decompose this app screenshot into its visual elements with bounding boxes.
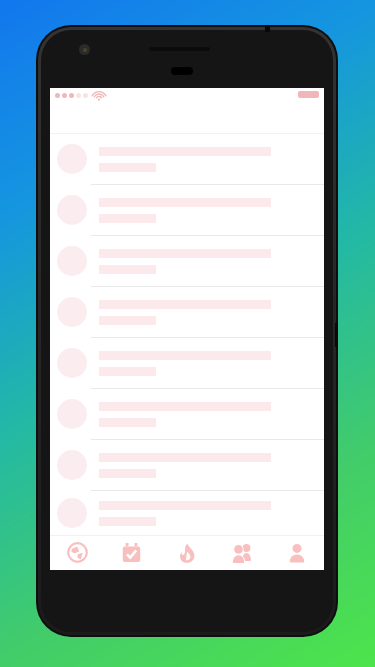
button[interactable]: Trending: [159, 535, 214, 570]
button[interactable]: Profile: [269, 535, 324, 570]
button[interactable]: [50, 134, 324, 184]
button[interactable]: [50, 287, 324, 337]
button[interactable]: [50, 440, 324, 490]
button[interactable]: Events: [104, 535, 159, 570]
button[interactable]: [50, 185, 324, 235]
button[interactable]: [50, 389, 324, 439]
button[interactable]: Groups: [214, 535, 269, 570]
button[interactable]: Discover: [50, 535, 104, 570]
button[interactable]: [50, 236, 324, 286]
button[interactable]: [50, 491, 324, 535]
button[interactable]: [50, 338, 324, 388]
